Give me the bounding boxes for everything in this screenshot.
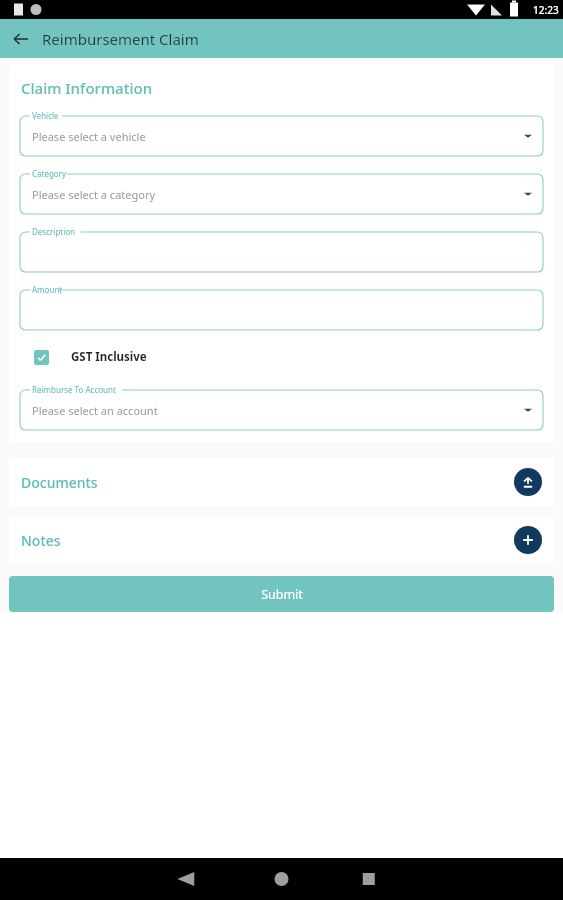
button[interactable]: Submit [9,576,554,612]
staticText: 12:23 [533,3,559,17]
staticText: Amount [32,284,63,295]
staticText: Please select a category [32,187,156,202]
button[interactable]: GST Inclusive [20,346,543,368]
staticText: Reimbursement Claim [42,29,199,49]
staticText: Claim Information [21,78,153,98]
button[interactable]: Add note [514,526,542,554]
staticText: Please select a vehicle [32,129,146,144]
button[interactable]: Notes [9,516,554,564]
staticText: Category [32,168,67,179]
button[interactable]: Amount [20,284,543,330]
button[interactable]: Reimburse To Account [20,384,543,430]
staticText: GST Inclusive [71,349,147,365]
staticText: Vehicle [32,110,59,121]
button[interactable]: Description [20,226,543,272]
staticText: Submit [261,586,303,603]
button[interactable]: Back [0,19,42,58]
staticText: Description [32,226,76,237]
button[interactable]: Documents [9,458,554,506]
button[interactable]: Vehicle [20,110,543,156]
button[interactable]: Upload document [514,468,542,496]
staticText: Documents [21,473,98,492]
button[interactable]: Category [20,168,543,214]
staticText: Notes [21,531,61,550]
staticText: Please select an account [32,403,158,418]
staticText: Reimburse To Account [32,384,116,395]
